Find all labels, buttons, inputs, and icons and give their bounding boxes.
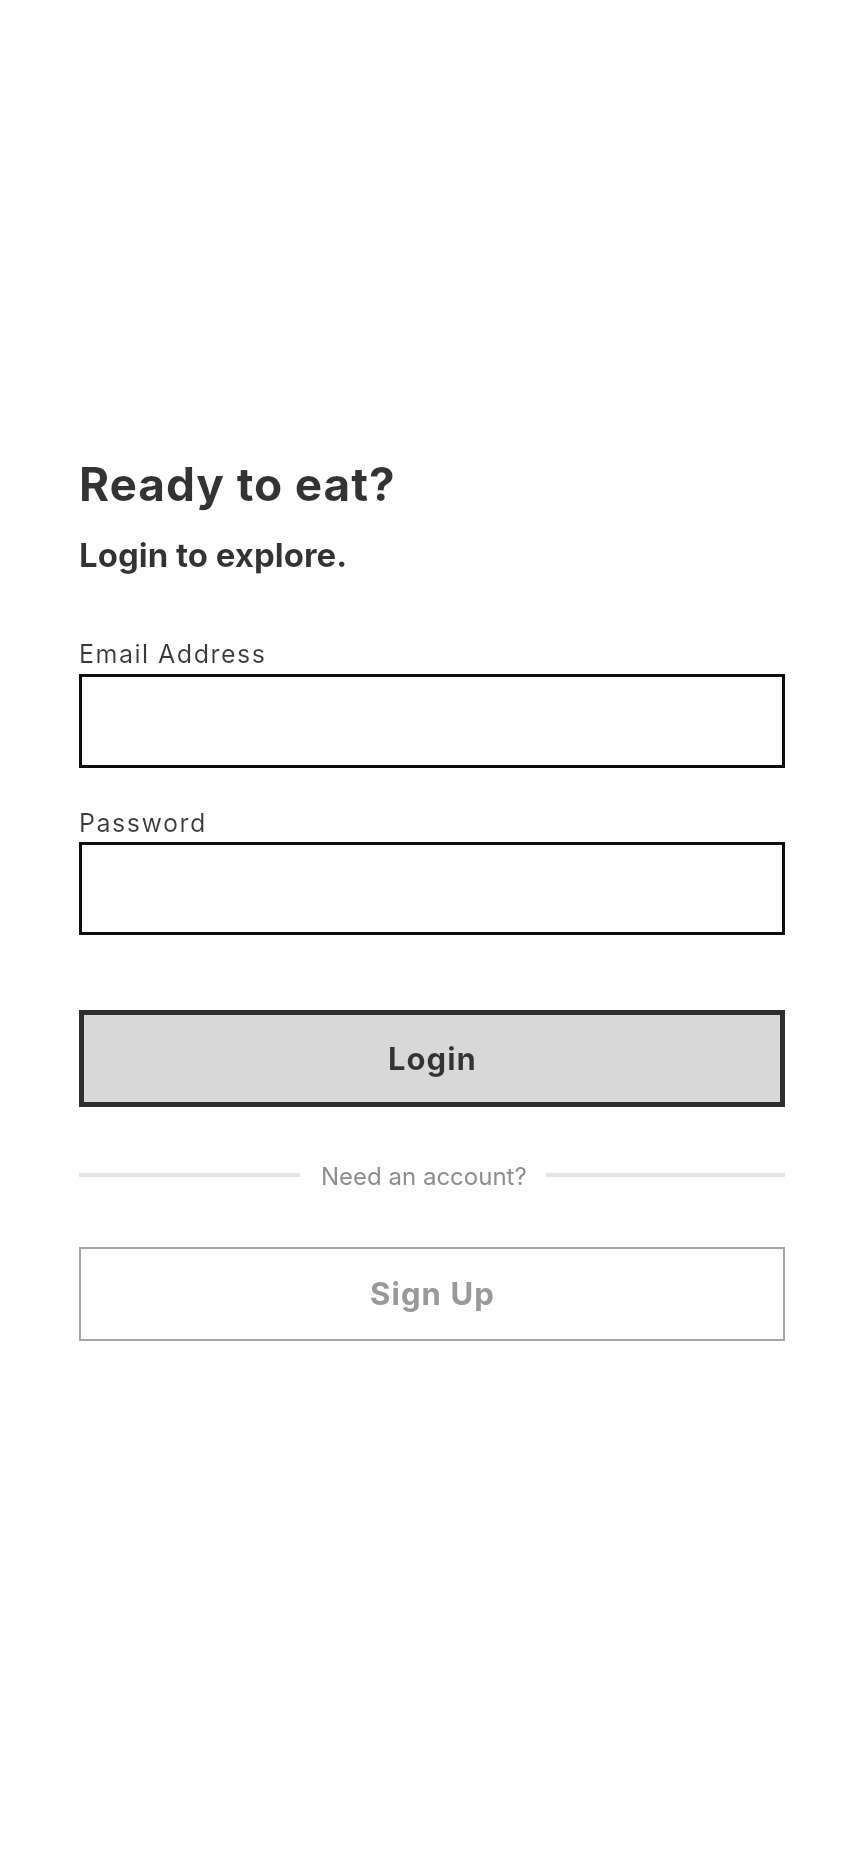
button[interactable] xyxy=(79,674,785,768)
staticText: Login xyxy=(388,1040,477,1078)
staticText: Sign Up xyxy=(370,1275,495,1313)
button[interactable]: Login xyxy=(79,1010,785,1107)
button[interactable] xyxy=(79,842,785,935)
button[interactable]: Sign Up xyxy=(79,1247,785,1341)
staticText: Email Address xyxy=(79,639,267,669)
staticText: Need an account? xyxy=(321,1162,527,1191)
staticText: Ready to eat? xyxy=(79,456,396,512)
staticText: Login to explore. xyxy=(79,535,348,575)
staticText: Password xyxy=(79,808,207,838)
